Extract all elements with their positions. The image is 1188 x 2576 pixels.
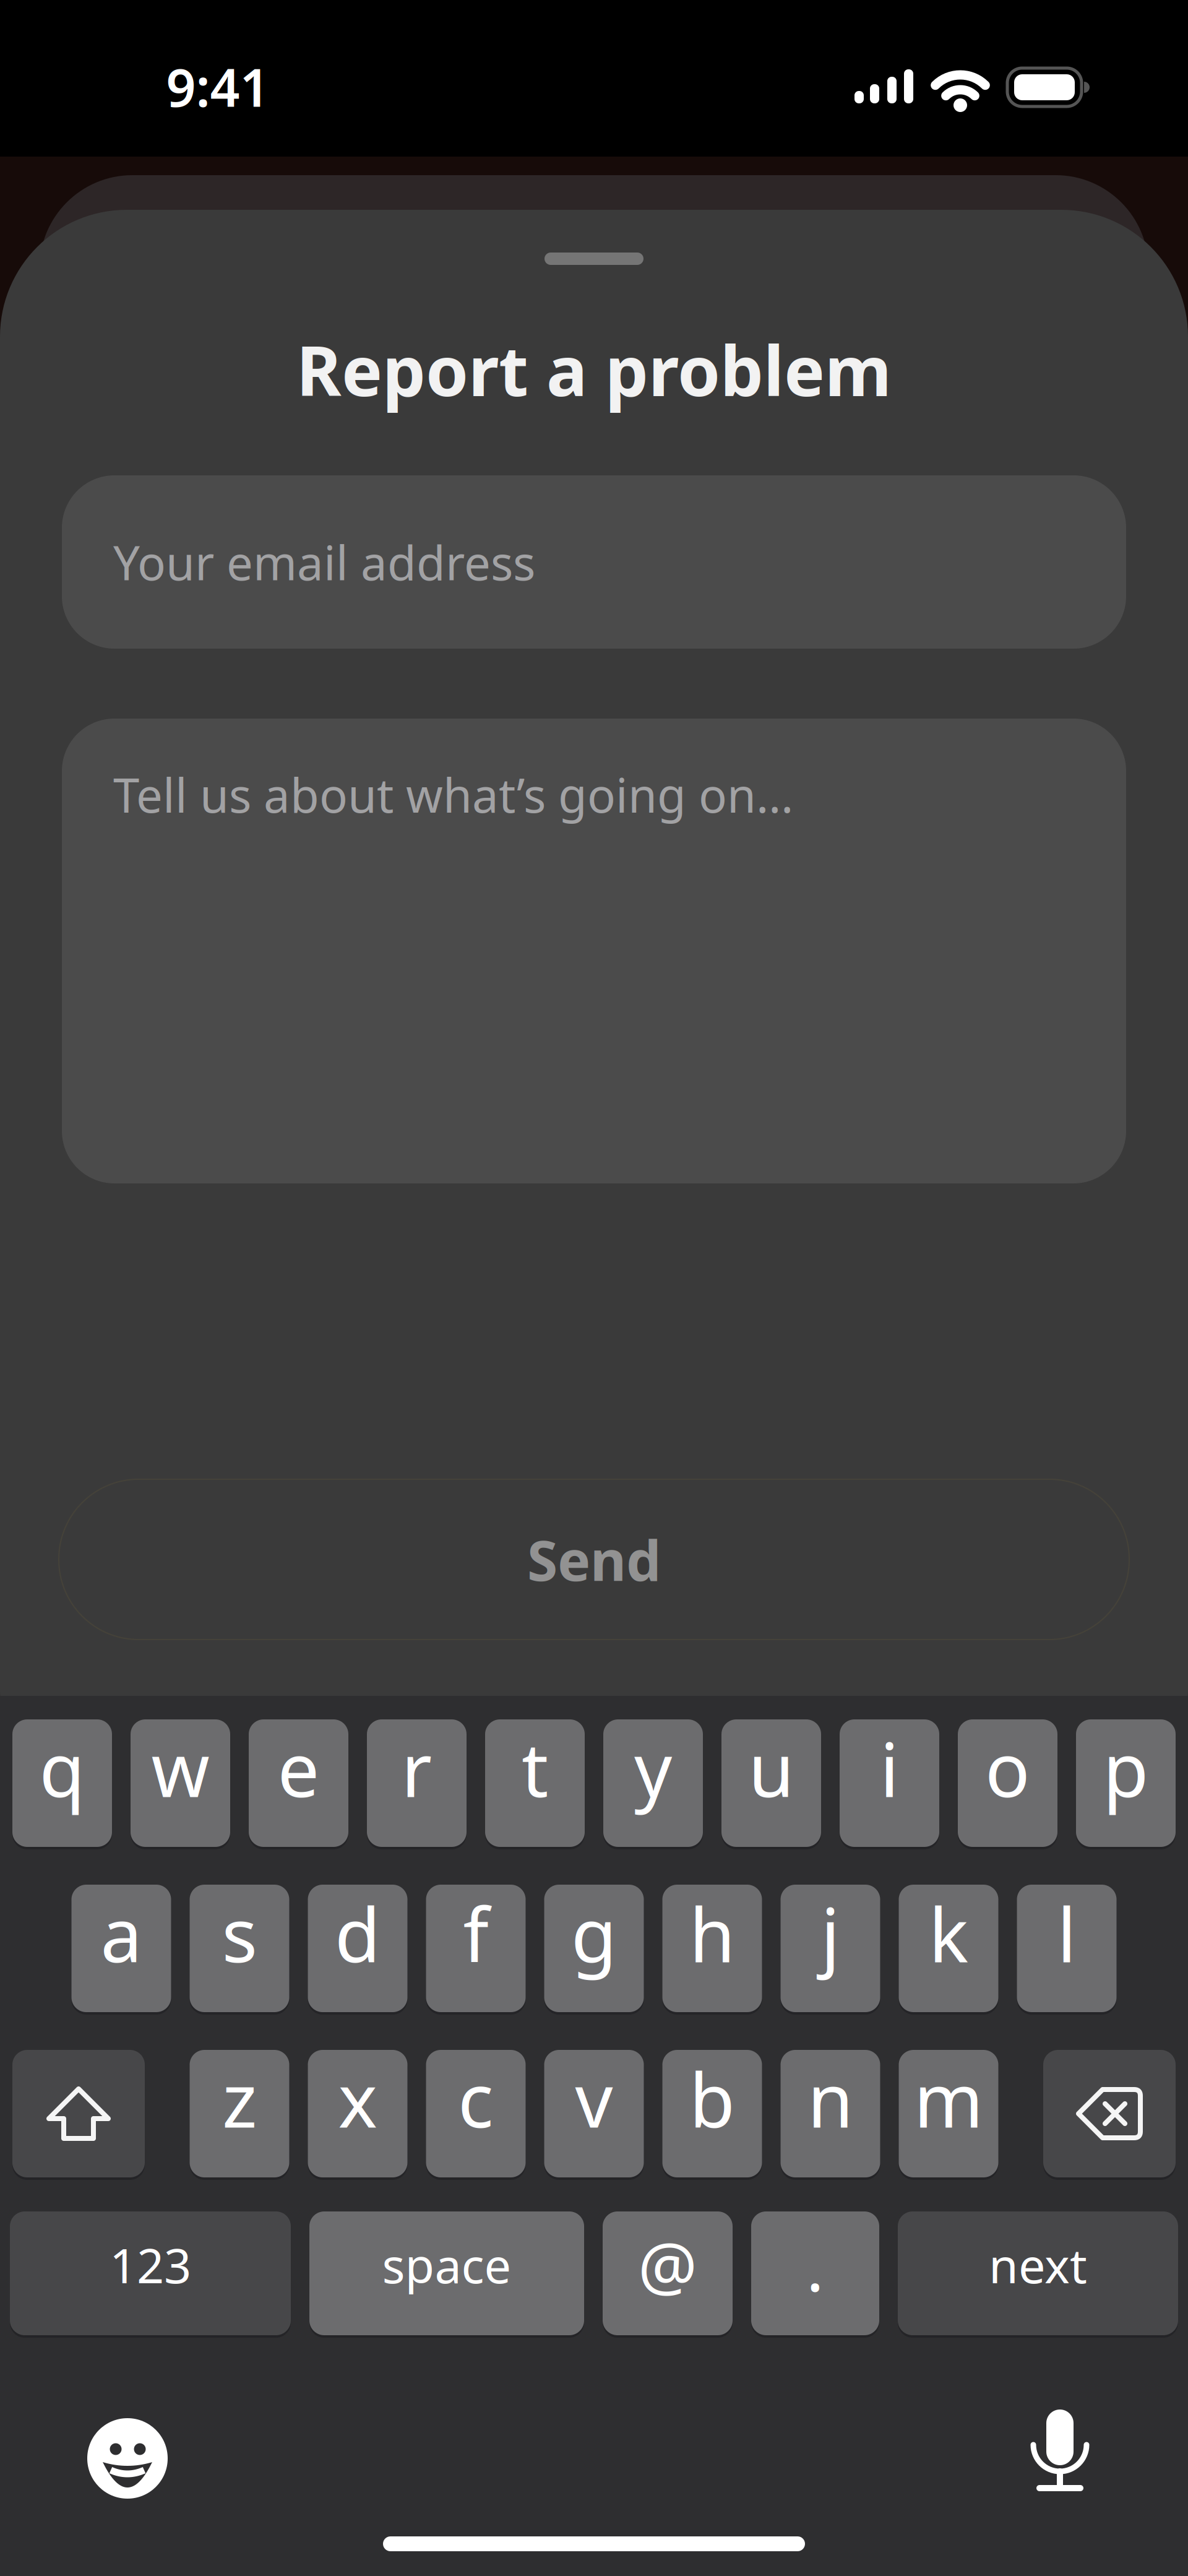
button[interactable]: next <box>898 2211 1178 2335</box>
staticText: d <box>335 1884 381 1983</box>
button[interactable] <box>12 2050 145 2177</box>
staticText: t <box>522 1719 548 1818</box>
staticText: p <box>1103 1719 1149 1818</box>
button[interactable]: b <box>662 2050 762 2177</box>
staticText: g <box>571 1884 617 1983</box>
button[interactable]: z <box>190 2050 289 2177</box>
staticText: @ <box>638 2221 697 2308</box>
staticText: s <box>222 1884 257 1983</box>
staticText: k <box>929 1884 968 1983</box>
button[interactable]: m <box>899 2050 998 2177</box>
button[interactable]: u <box>721 1719 821 1847</box>
staticText: next <box>989 2233 1087 2296</box>
button[interactable] <box>1043 2050 1176 2177</box>
button[interactable]: Tell us about what’s going on... <box>62 719 1126 1183</box>
button[interactable]: t <box>485 1719 585 1847</box>
staticText: w <box>151 1719 209 1818</box>
button[interactable]: x <box>308 2050 407 2177</box>
button[interactable]: a <box>71 1885 171 2012</box>
staticText: m <box>914 2049 983 2148</box>
button[interactable]: space <box>309 2211 584 2335</box>
button[interactable]: j <box>781 1885 880 2012</box>
staticText: y <box>634 1719 672 1818</box>
staticText: . <box>806 2222 824 2310</box>
button[interactable] <box>1032 2409 1088 2496</box>
staticText: a <box>101 1884 142 1983</box>
button[interactable]: p <box>1076 1719 1176 1847</box>
button[interactable]: . <box>751 2211 879 2335</box>
staticText: space <box>382 2233 511 2296</box>
staticText: Tell us about what’s going on... <box>113 763 793 826</box>
staticText: u <box>748 1719 794 1818</box>
staticText: Report a problem <box>296 324 892 415</box>
button[interactable]: Send <box>59 1479 1129 1640</box>
staticText: b <box>689 2049 735 2148</box>
button[interactable]: f <box>426 1885 526 2012</box>
staticText: f <box>463 1884 489 1983</box>
staticText: x <box>338 2049 377 2148</box>
button[interactable]: Your email address <box>62 475 1126 649</box>
staticText: l <box>1057 1884 1076 1983</box>
staticText: 123 <box>110 2233 191 2296</box>
staticText: z <box>222 2049 257 2148</box>
button[interactable]: @ <box>603 2211 733 2335</box>
button[interactable]: v <box>544 2050 644 2177</box>
staticText: c <box>458 2049 494 2148</box>
button[interactable]: o <box>958 1719 1057 1847</box>
button[interactable]: h <box>662 1885 762 2012</box>
staticText: j <box>821 1884 840 1983</box>
staticText: r <box>401 1719 432 1818</box>
staticText: e <box>278 1719 320 1818</box>
button[interactable]: r <box>367 1719 467 1847</box>
staticText: Send <box>527 1523 661 1596</box>
staticText: 9:41 <box>166 52 269 121</box>
button[interactable]: e <box>249 1719 348 1847</box>
staticText: q <box>39 1719 85 1818</box>
button[interactable]: g <box>544 1885 644 2012</box>
button[interactable]: n <box>781 2050 880 2177</box>
button[interactable]: w <box>131 1719 230 1847</box>
button[interactable]: 123 <box>10 2211 291 2335</box>
button[interactable]: y <box>603 1719 703 1847</box>
button[interactable] <box>87 2418 168 2499</box>
button[interactable]: l <box>1017 1885 1117 2012</box>
staticText: o <box>985 1719 1030 1818</box>
button[interactable]: i <box>840 1719 939 1847</box>
staticText: i <box>880 1719 899 1818</box>
button[interactable]: q <box>12 1719 112 1847</box>
staticText: Your email address <box>113 531 535 593</box>
button[interactable]: d <box>308 1885 407 2012</box>
button[interactable]: c <box>426 2050 526 2177</box>
button[interactable]: s <box>190 1885 289 2012</box>
staticText: n <box>807 2049 853 2148</box>
staticText: v <box>575 2049 613 2148</box>
staticText: h <box>689 1884 735 1983</box>
button[interactable]: k <box>899 1885 998 2012</box>
